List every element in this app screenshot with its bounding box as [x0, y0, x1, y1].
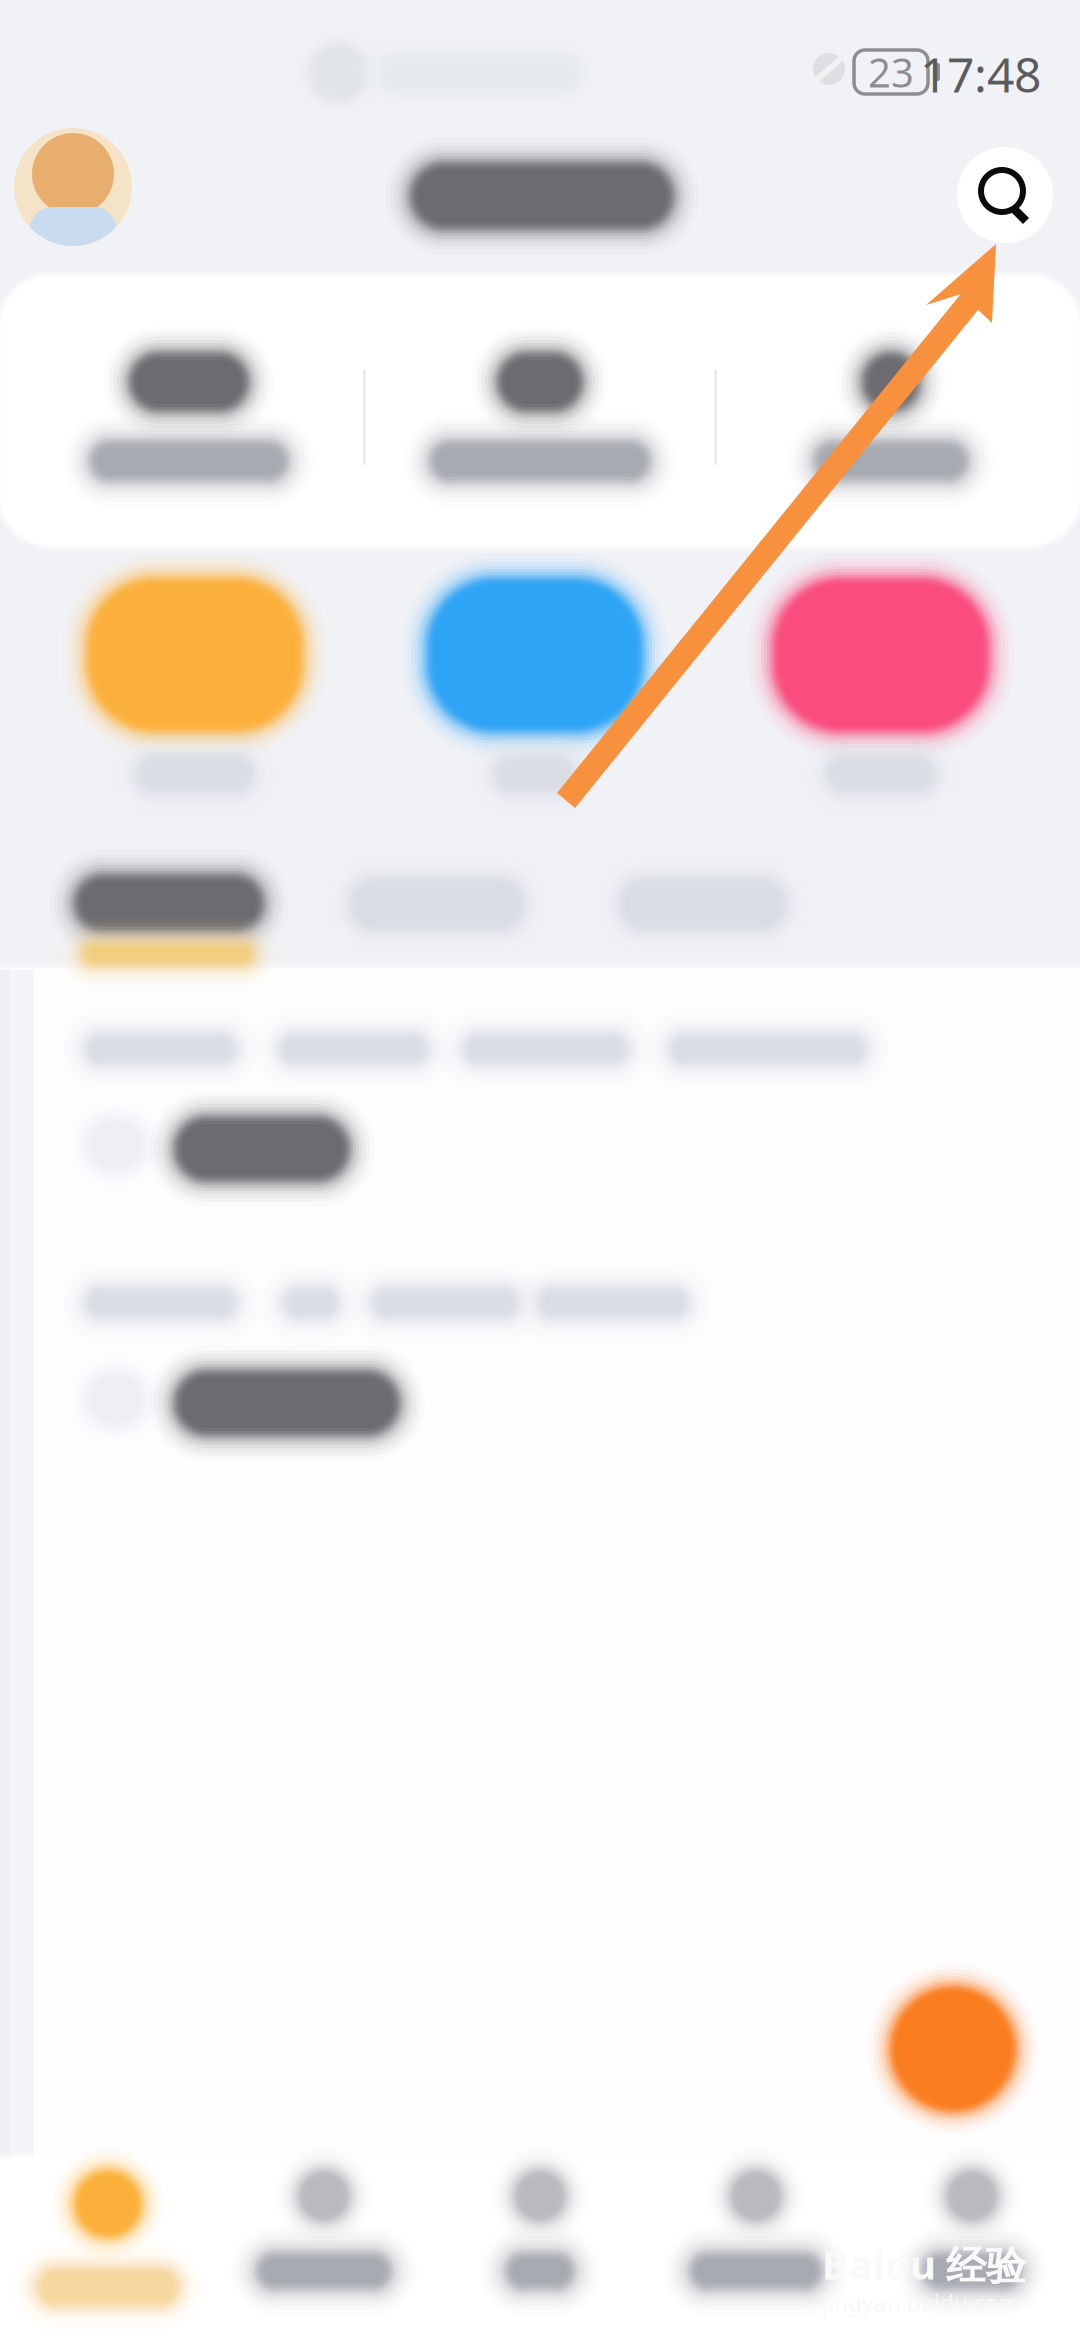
button[interactable]	[318, 854, 556, 994]
button[interactable]	[0, 1020, 1080, 1260]
button[interactable]	[389, 582, 681, 828]
button[interactable]	[588, 854, 818, 994]
button[interactable]	[49, 582, 341, 828]
button[interactable]: Tab	[0, 2174, 216, 2338]
staticText: Baidu 经验	[822, 2237, 1026, 2291]
button[interactable]	[735, 582, 1027, 828]
staticText: jingyan.baidu.com	[822, 2288, 1020, 2318]
staticText: 17:48	[920, 42, 1041, 106]
button[interactable]	[0, 1274, 1080, 1514]
button[interactable]: Tab	[432, 2174, 648, 2338]
button[interactable]	[46, 854, 294, 994]
button[interactable]: Tab	[864, 2174, 1080, 2338]
staticText: 23	[868, 45, 914, 98]
button[interactable]	[365, 290, 714, 544]
button[interactable]: Compose	[894, 1990, 1012, 2108]
button[interactable]: Search	[957, 147, 1053, 243]
button[interactable]: Tab	[648, 2174, 864, 2338]
button[interactable]	[716, 290, 1065, 544]
button[interactable]: Tab	[216, 2174, 432, 2338]
button[interactable]	[14, 290, 363, 544]
button[interactable]: Profile	[14, 128, 132, 246]
